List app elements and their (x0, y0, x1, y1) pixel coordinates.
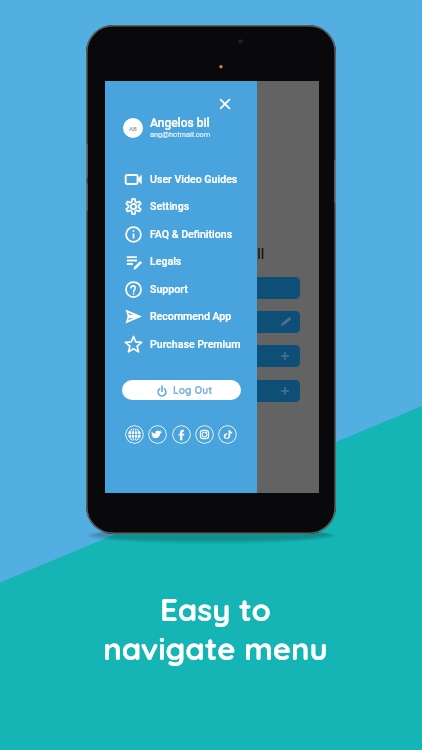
staticText: Legals (150, 255, 182, 267)
staticText: Angelos bil (150, 116, 210, 130)
staticText: ang@hotmail.com (150, 130, 211, 139)
button[interactable]: Facebook (172, 425, 191, 444)
staticText: Settings (150, 200, 190, 212)
button[interactable]: Close menu (215, 94, 235, 114)
staticText: User Video Guides (150, 173, 238, 185)
button[interactable]: Website (125, 425, 144, 444)
staticText: Support (150, 283, 188, 295)
staticText: Log Out (173, 384, 213, 397)
staticText: Purchase Premium (150, 338, 241, 350)
button[interactable]: Purchase Premium (105, 330, 257, 358)
button[interactable] (145, 345, 300, 367)
staticText: Easy to (160, 590, 271, 629)
button[interactable]: Legals (105, 247, 257, 275)
button[interactable] (145, 380, 300, 402)
button[interactable]: Settings (105, 192, 257, 220)
button[interactable]: FAQ & Definitions (105, 220, 257, 248)
staticText: AB (129, 125, 137, 132)
button[interactable]: User Video Guides (105, 165, 257, 193)
button[interactable]: Twitter (148, 425, 167, 444)
staticText: Install (226, 246, 265, 262)
staticText: Recommend App (150, 310, 232, 322)
button[interactable]: Instagram (195, 425, 214, 444)
staticText: FAQ & Definitions (150, 228, 233, 240)
button[interactable] (145, 277, 300, 299)
button[interactable] (145, 311, 300, 333)
button[interactable]: Support (105, 275, 257, 303)
button[interactable]: TikTok (218, 425, 237, 444)
button[interactable]: Log Out (122, 380, 241, 400)
staticText: navigate menu (103, 629, 328, 668)
button[interactable]: Recommend App (105, 302, 257, 330)
